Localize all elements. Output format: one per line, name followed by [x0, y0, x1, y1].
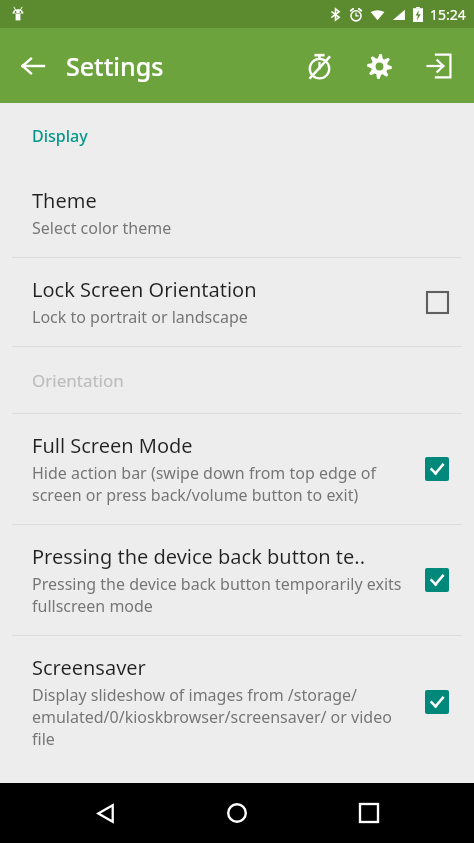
button[interactable]: Recent apps [342, 786, 396, 840]
staticText: Pressing the device back button te.. [32, 543, 366, 570]
button[interactable]: Timer off [296, 43, 342, 89]
button[interactable]: Toggle [420, 452, 454, 486]
staticText: Display slideshow of images from /storag… [32, 684, 406, 750]
button[interactable]: Home [210, 786, 264, 840]
button[interactable]: Toggle [420, 685, 454, 719]
button[interactable]: Theme [0, 169, 474, 257]
button[interactable]: Toggle [420, 285, 454, 319]
button[interactable]: Settings [356, 43, 402, 89]
button[interactable]: Back [10, 43, 56, 89]
staticText: Lock to portrait or landscape [32, 306, 248, 328]
button[interactable]: Pressing the device back button te.. [0, 525, 474, 635]
staticText: 15:24 [430, 5, 466, 24]
staticText: Hide action bar (swipe down from top edg… [32, 462, 406, 506]
staticText: Full Screen Mode [32, 432, 193, 459]
staticText: Theme [32, 187, 97, 214]
staticText: Select color theme [32, 217, 172, 239]
staticText: Pressing the device back button temporar… [32, 573, 406, 617]
staticText: Display [32, 125, 88, 147]
button[interactable]: Back [78, 786, 132, 840]
staticText: Settings [66, 49, 164, 83]
button[interactable]: Toggle [420, 563, 454, 597]
staticText: Screensaver [32, 654, 146, 681]
staticText: Lock Screen Orientation [32, 276, 257, 303]
staticText: Orientation [32, 369, 124, 392]
button[interactable]: Lock Screen Orientation [0, 258, 474, 346]
button[interactable]: Screensaver [0, 636, 474, 768]
button[interactable]: Exit [416, 43, 462, 89]
button[interactable]: Full Screen Mode [0, 414, 474, 524]
